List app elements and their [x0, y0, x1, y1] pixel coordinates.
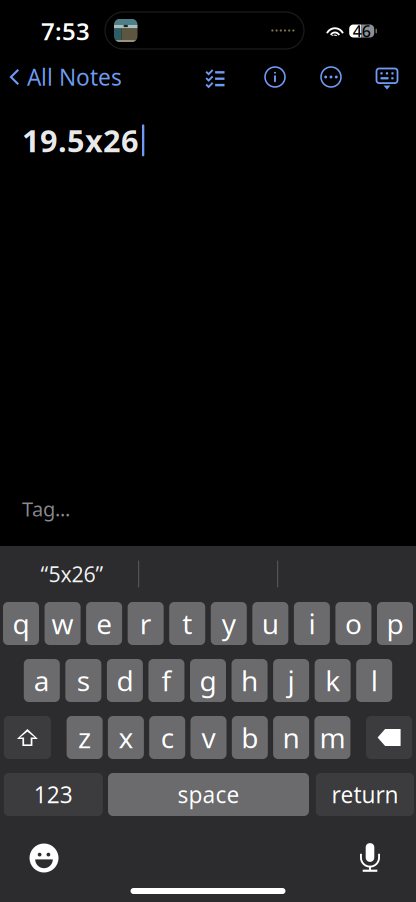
staticText: e: [96, 605, 112, 642]
button[interactable]: x: [108, 716, 144, 759]
button[interactable]: q: [3, 602, 39, 645]
staticText: 7:53: [41, 15, 90, 47]
button[interactable]: c: [149, 716, 185, 759]
staticText: 123: [34, 779, 73, 809]
staticText: u: [262, 605, 279, 642]
button[interactable]: Hide Keyboard: [365, 58, 409, 96]
button[interactable]: g: [190, 659, 226, 702]
button[interactable]: f: [148, 659, 184, 702]
button[interactable]: t: [169, 602, 205, 645]
staticText: i: [308, 605, 315, 642]
button[interactable]: 123: [4, 773, 103, 816]
button[interactable]: space: [108, 773, 309, 816]
staticText: a: [34, 662, 50, 699]
button[interactable]: i: [294, 602, 330, 645]
staticText: y: [222, 605, 236, 642]
button[interactable]: return: [316, 773, 414, 816]
button[interactable]: n: [273, 716, 309, 759]
button[interactable]: k: [315, 659, 351, 702]
staticText: k: [325, 662, 340, 699]
button[interactable]: d: [107, 659, 143, 702]
staticText: 46: [353, 20, 371, 42]
button[interactable]: All Notes: [0, 57, 122, 97]
staticText: space: [177, 779, 239, 809]
button[interactable]: o: [335, 602, 371, 645]
button[interactable]: b: [232, 716, 268, 759]
staticText: 19.5x26: [22, 120, 139, 161]
button[interactable]: v: [190, 716, 226, 759]
staticText: t: [182, 605, 192, 642]
staticText: d: [116, 662, 133, 699]
staticText: j: [288, 662, 295, 699]
button[interactable]: Shift: [4, 716, 51, 759]
staticText: l: [371, 662, 378, 699]
staticText: return: [331, 779, 398, 809]
button[interactable]: Checklist: [193, 59, 237, 95]
button[interactable]: l: [356, 659, 392, 702]
button[interactable]: m: [314, 716, 350, 759]
staticText: s: [77, 662, 90, 699]
staticText: h: [241, 662, 258, 699]
staticText: v: [201, 719, 215, 756]
staticText: r: [140, 605, 152, 642]
staticText: Tag...: [22, 495, 70, 522]
button[interactable]: j: [273, 659, 309, 702]
staticText: g: [199, 662, 216, 699]
button[interactable]: r: [128, 602, 164, 645]
staticText: m: [319, 719, 345, 756]
button[interactable]: More: [309, 60, 353, 94]
button[interactable]: p: [377, 602, 413, 645]
staticText: w: [52, 605, 74, 642]
staticText: “5x26”: [40, 560, 103, 588]
button[interactable]: Info: [253, 60, 297, 94]
staticText: b: [241, 719, 258, 756]
staticText: All Notes: [27, 62, 122, 92]
button[interactable]: z: [67, 716, 103, 759]
staticText: n: [283, 719, 300, 756]
staticText: p: [386, 605, 403, 642]
staticText: x: [118, 719, 133, 756]
button[interactable]: e: [86, 602, 122, 645]
button[interactable]: h: [232, 659, 268, 702]
button[interactable]: Dictate: [347, 837, 393, 879]
staticText: f: [161, 662, 171, 699]
staticText: o: [345, 605, 362, 642]
button[interactable]: Delete: [366, 716, 412, 759]
staticText: q: [12, 605, 29, 642]
staticText: c: [161, 719, 174, 756]
button[interactable]: y: [211, 602, 247, 645]
button[interactable]: w: [45, 602, 81, 645]
button[interactable]: u: [252, 602, 288, 645]
button[interactable]: s: [65, 659, 101, 702]
button[interactable]: Emoji: [21, 837, 67, 879]
staticText: z: [78, 719, 91, 756]
button[interactable]: a: [24, 659, 60, 702]
